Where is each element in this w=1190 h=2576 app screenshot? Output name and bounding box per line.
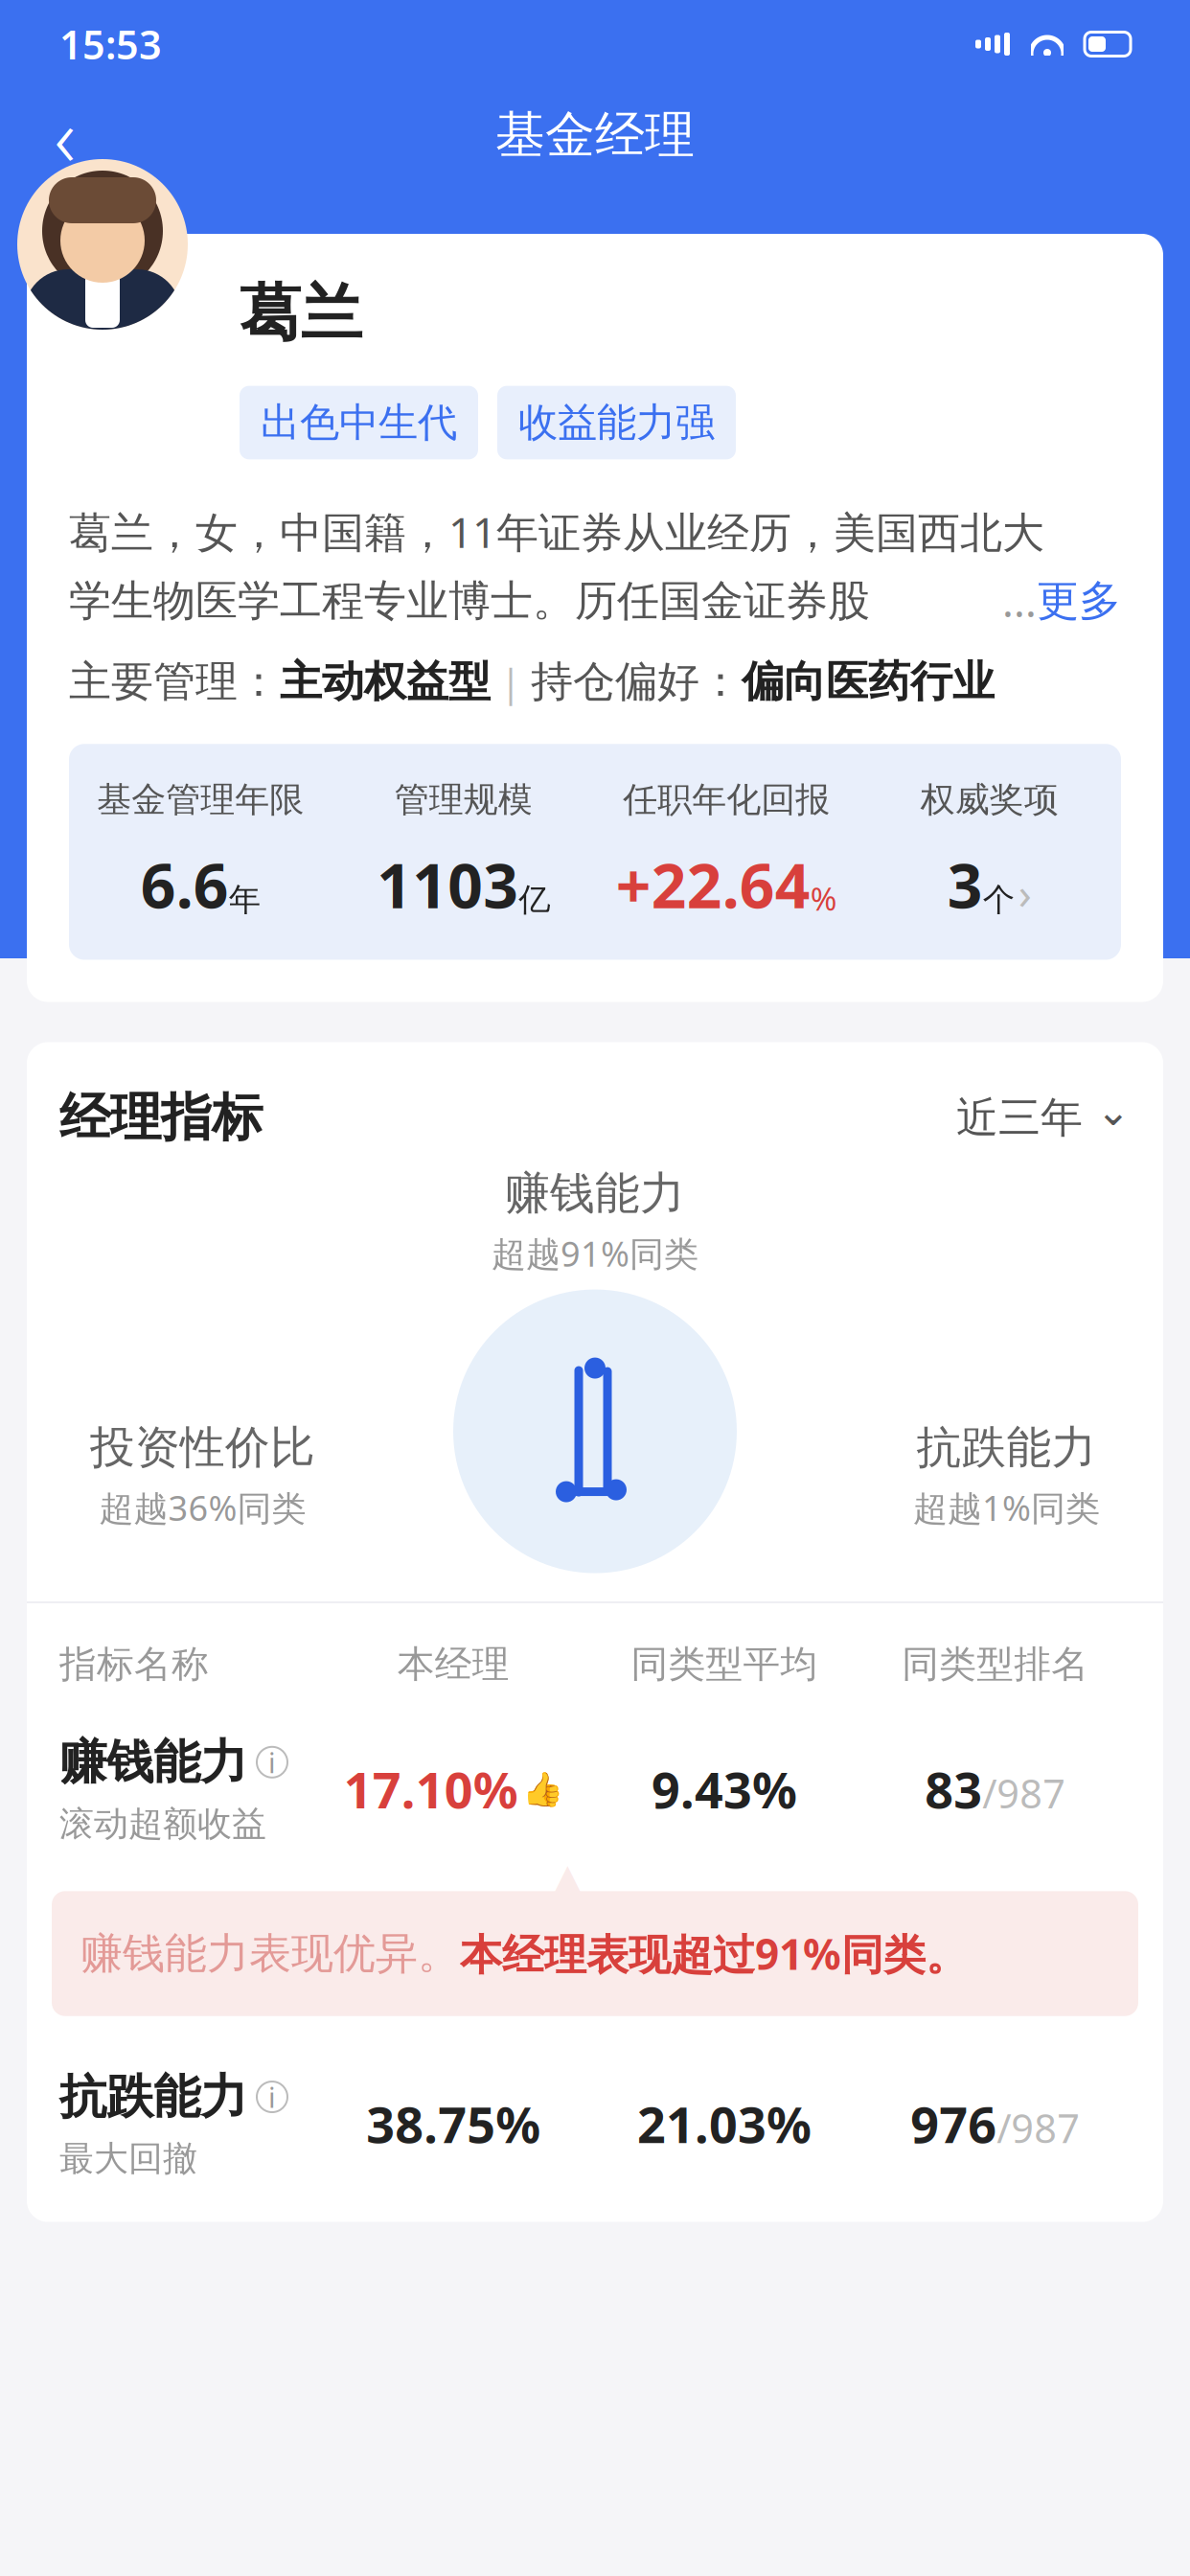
staticText: 本经理 [397,1642,510,1687]
staticText: % [810,877,837,920]
staticText: 学生物医学工程专业博士。历任国金证券股 [69,575,870,627]
button[interactable]: 基金管理年限 [69,744,1121,960]
staticText: 本经理表现超过91%同类。 [460,1926,968,1982]
staticText: 葛兰，女，中国籍，11年证券从业经历，美国西北大 [69,504,1044,559]
staticText: 最大回撤 [59,2137,197,2180]
staticText: 赚钱能力表现优异。 [80,1928,460,1979]
staticText: 同类型平均 [631,1642,818,1687]
staticText: 976 [910,2091,997,2157]
staticText: +22.64 [616,844,810,925]
staticText: 滚动超额收益 [59,1803,266,1845]
staticText: 17.10% [344,1756,518,1822]
staticText: 21.03% [637,2091,812,2157]
staticText: 赚钱能力 [59,1733,247,1791]
button[interactable]: 近三年 [956,1088,1131,1148]
button[interactable]: 赚钱能力 [27,1733,1163,1845]
staticText: 3 [947,844,983,925]
button[interactable]: ... [1002,573,1121,629]
staticText: 任职年化回报 [623,778,830,821]
staticText: 1103 [377,844,519,925]
staticText: 赚钱能力 [505,1166,685,1221]
staticText: 经理指标 [59,1086,263,1149]
staticText: 15:53 [59,18,162,70]
staticText: 近三年 [956,1092,1083,1143]
staticText: /987 [982,1767,1066,1819]
staticText: | [491,656,531,707]
button[interactable]: 抗跌能力 [27,2068,1163,2180]
staticText: 主要管理： [69,656,280,707]
staticText: 持仓偏好： [531,656,742,707]
staticText: 投资性价比 [90,1420,315,1475]
staticText: 超越1%同类 [913,1485,1100,1530]
staticText: 👍 [522,1770,563,1808]
staticText: 基金经理 [495,105,695,166]
staticText: 9.43% [652,1756,797,1822]
staticText: 出色中生代 [261,398,457,447]
staticText: 个 [983,880,1014,919]
staticText: 指标名称 [59,1642,209,1687]
staticText: 更多 [1037,575,1121,627]
staticText: 基金管理年限 [97,778,304,821]
staticText: › [1018,864,1032,921]
staticText: 抗跌能力 [916,1420,1097,1475]
staticText: 6.6 [141,844,229,925]
staticText: 抗跌能力 [59,2068,247,2126]
staticText: ▲ [550,1854,585,1906]
staticText: 收益能力强 [518,398,715,447]
staticText: 83 [925,1756,982,1822]
staticText: i [268,2078,276,2116]
staticText: 权威奖项 [921,778,1059,821]
staticText: 葛兰 [240,276,362,351]
staticText: 超越36%同类 [99,1485,306,1530]
staticText: 38.75% [366,2091,541,2157]
staticText: ‹ [54,81,76,189]
staticText: 偏向医药行业 [742,656,995,707]
staticText: 超越91%同类 [492,1230,698,1276]
button[interactable]: 返回 [29,99,102,172]
staticText: i [268,1743,276,1781]
staticText: 年 [229,880,260,919]
staticText: ⌄ [1096,1088,1131,1134]
staticText: 管理规模 [395,778,533,821]
staticText: ... [1002,573,1037,629]
staticText: 同类型排名 [902,1642,1089,1687]
staticText: /987 [997,2101,1080,2154]
staticText: 亿 [519,880,550,919]
staticText: 主动权益型 [280,656,491,707]
